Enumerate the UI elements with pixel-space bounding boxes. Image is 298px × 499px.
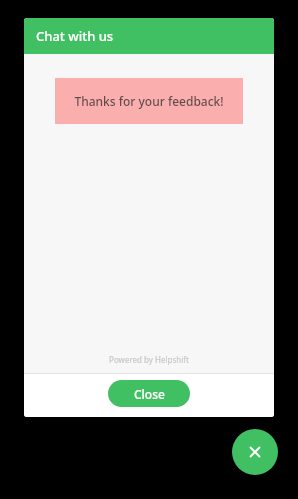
staticText: Thanks for your feedback! bbox=[74, 93, 224, 109]
button[interactable]: Chat with us bbox=[24, 18, 274, 54]
button[interactable]: Close bbox=[108, 380, 190, 407]
staticText: Chat with us bbox=[36, 27, 114, 45]
staticText: Powered by Helpshift bbox=[109, 354, 189, 365]
button[interactable]: Thanks for your feedback! bbox=[55, 78, 243, 124]
staticText: Close bbox=[134, 386, 165, 402]
button[interactable]: Close chat bbox=[232, 429, 278, 475]
